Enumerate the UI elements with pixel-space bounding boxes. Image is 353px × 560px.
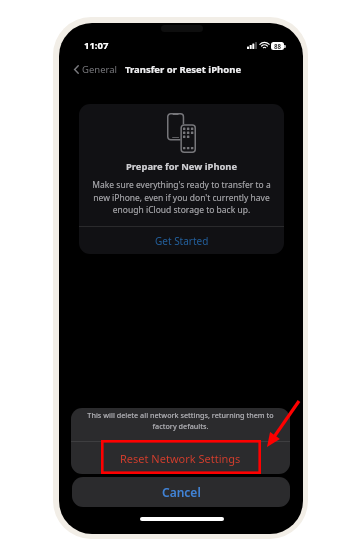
button[interactable]: Reset Network Settings	[71, 442, 290, 474]
button[interactable]: General	[74, 63, 118, 76]
staticText: 88	[274, 42, 282, 50]
button[interactable]: Cancel	[72, 477, 290, 507]
staticText: Cancel	[162, 484, 201, 500]
staticText: 11:07	[84, 39, 109, 52]
staticText: Transfer or Reset iPhone	[125, 63, 242, 76]
other: Wi-Fi	[260, 42, 269, 49]
button[interactable]: Get Started	[79, 227, 284, 254]
staticText: General	[82, 63, 118, 76]
staticText: Reset Network Settings	[120, 451, 241, 466]
staticText: Make sure everything's ready to transfer…	[89, 179, 274, 215]
staticText: This will delete all network settings, r…	[81, 410, 280, 431]
staticText: Prepare for New iPhone	[126, 160, 238, 173]
staticText: Get Started	[155, 234, 209, 248]
other: Cellular signal	[247, 42, 257, 49]
